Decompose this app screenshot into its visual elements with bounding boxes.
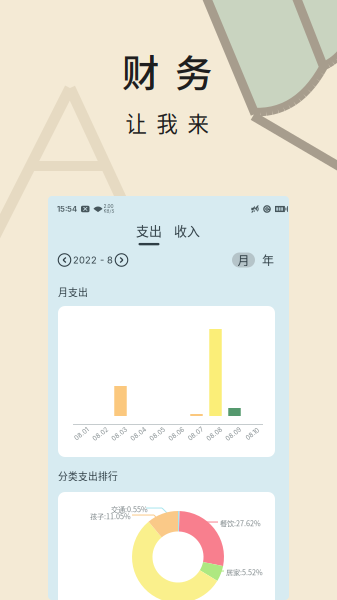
staticText: 08.06 xyxy=(167,430,185,438)
staticText: 年 xyxy=(262,251,274,269)
staticText: 08.01 xyxy=(73,430,89,438)
staticText: 08.02 xyxy=(91,430,109,438)
staticText: 居家:5.52% xyxy=(226,567,263,577)
button[interactable]: 支出 xyxy=(132,221,166,245)
staticText: 分类支出排行 xyxy=(58,469,118,483)
button[interactable]: 月 xyxy=(232,252,255,267)
button[interactable]: Previous month xyxy=(56,252,72,268)
staticText: 收入 xyxy=(174,221,200,239)
button[interactable]: 收入 xyxy=(170,221,204,245)
staticText: 财 务 xyxy=(122,44,212,98)
staticText: 交通:0.55% xyxy=(111,504,148,514)
staticText: 让 我 来 xyxy=(125,107,208,138)
staticText: 2022 - 8 xyxy=(73,254,113,266)
staticText: ✕ xyxy=(82,205,88,213)
staticText: 月 xyxy=(237,251,249,269)
staticText: 15:54 xyxy=(57,204,77,214)
staticText: 月支出 xyxy=(58,285,88,299)
staticText: 08.07 xyxy=(187,430,204,438)
staticText: 08.03 xyxy=(110,430,128,438)
staticText: 08.08 xyxy=(205,430,223,438)
button[interactable]: 年 xyxy=(258,252,278,267)
staticText: 孩子:11.05% xyxy=(90,511,131,521)
staticText: KB/S xyxy=(103,209,114,214)
staticText: 08.10 xyxy=(245,430,260,438)
staticText: 08.09 xyxy=(224,430,242,438)
staticText: 支出 xyxy=(136,221,162,239)
button[interactable]: Next month xyxy=(113,252,129,268)
staticText: 2.00 xyxy=(103,203,113,209)
staticText: 08.04 xyxy=(129,430,147,438)
staticText: 餐饮:27.62% xyxy=(220,518,261,528)
staticText: 08.05 xyxy=(148,430,166,438)
